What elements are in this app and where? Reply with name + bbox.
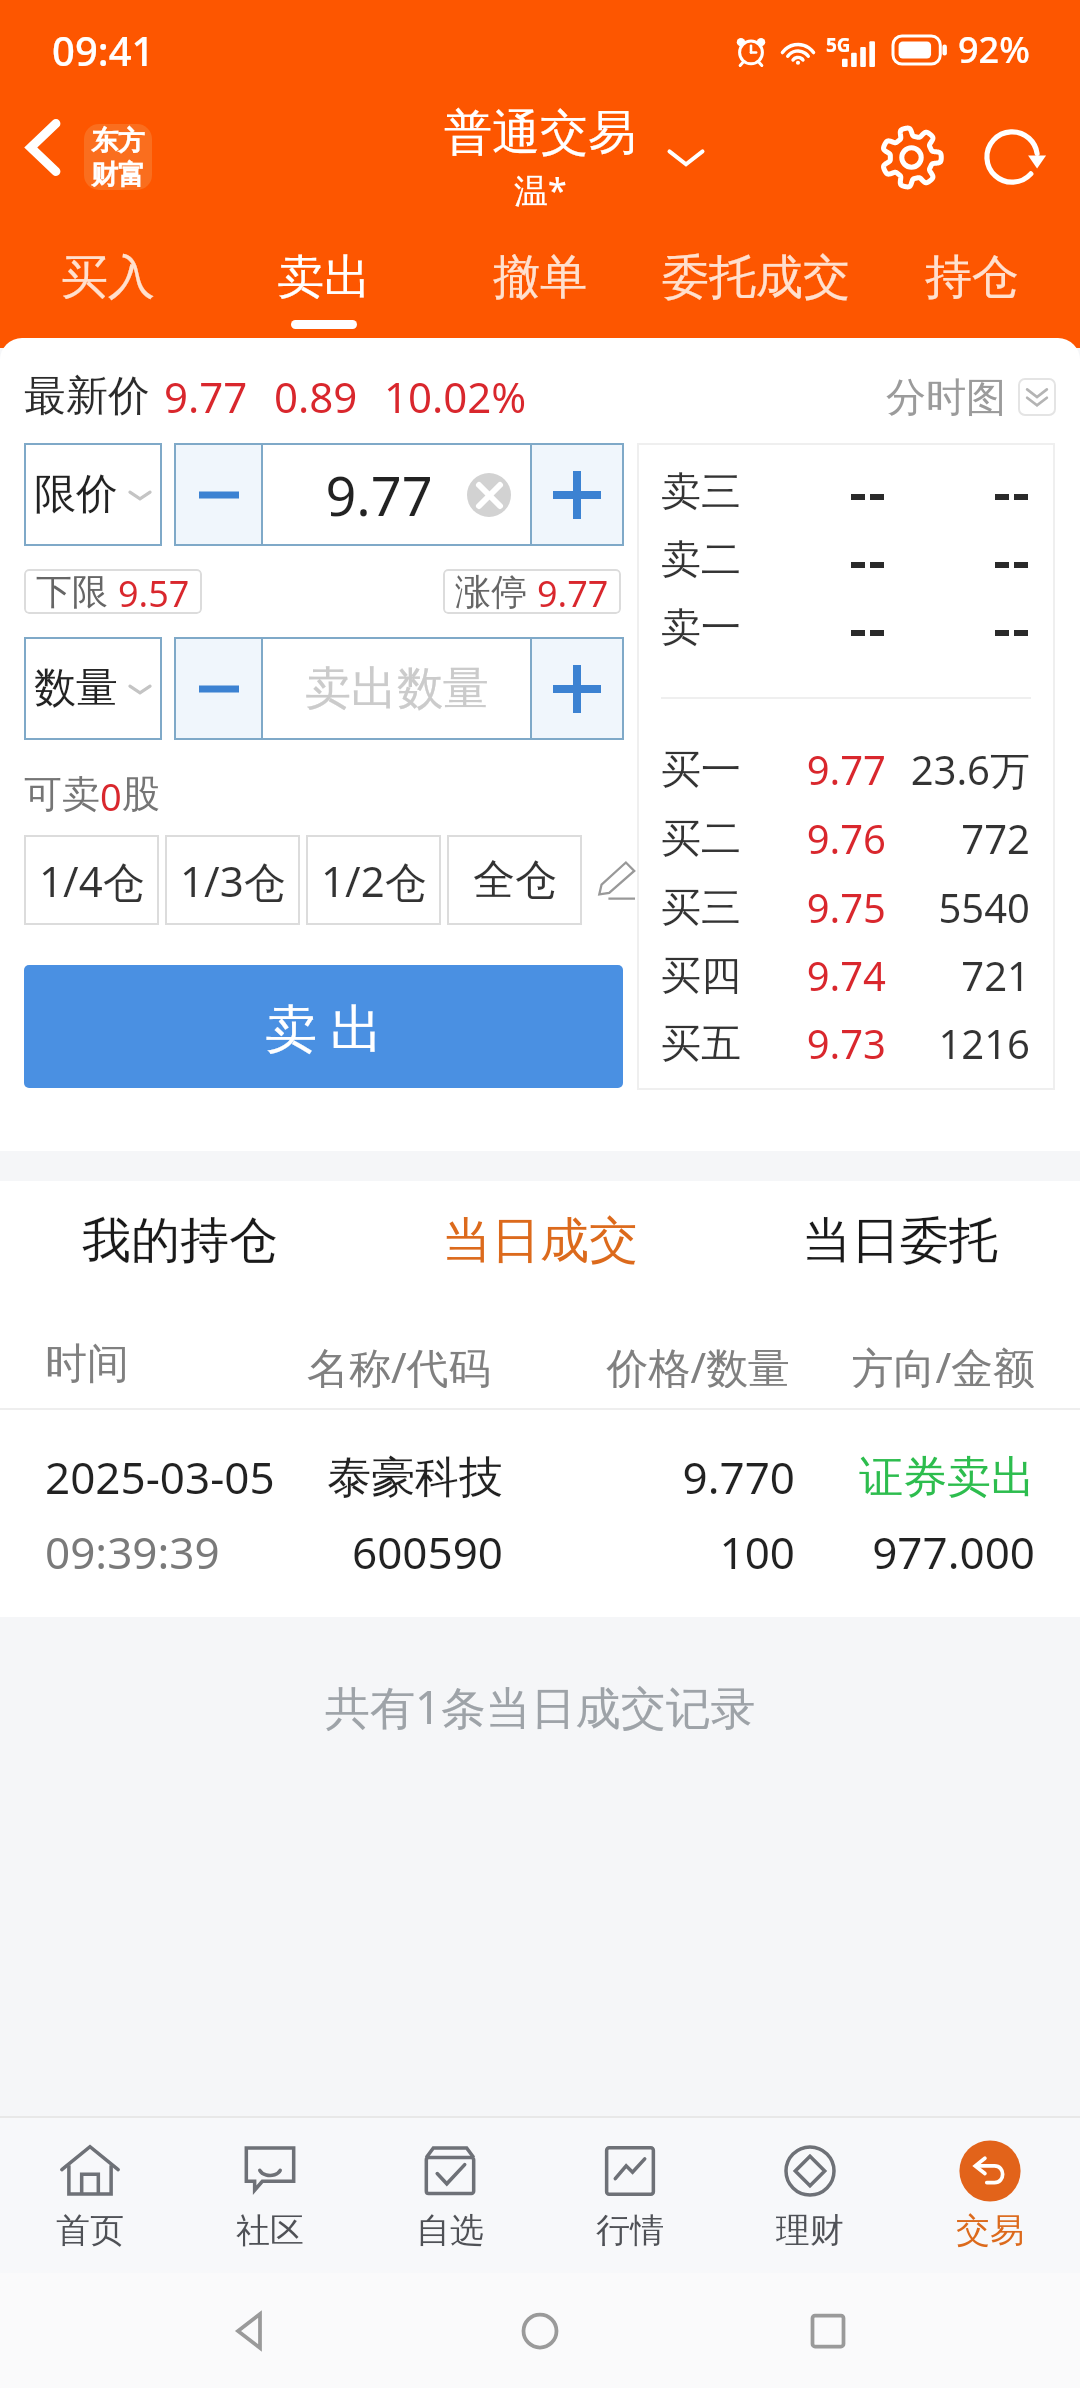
button[interactable]: 卖出数量 bbox=[263, 637, 530, 740]
button[interactable]: 卖一 bbox=[637, 597, 1055, 657]
staticText: 温* bbox=[514, 167, 567, 213]
button[interactable]: 委托成交 bbox=[648, 233, 864, 338]
button[interactable]: Back bbox=[216, 2295, 288, 2367]
staticText: 9.57 bbox=[118, 569, 190, 614]
button[interactable]: 2025-03-05 bbox=[0, 1443, 1080, 1598]
staticText: 涨停 bbox=[455, 569, 527, 614]
staticText: 9.77 bbox=[281, 458, 477, 532]
button[interactable]: 买入 bbox=[0, 233, 216, 338]
button[interactable]: 1/2仓 bbox=[306, 835, 441, 925]
button[interactable]: 买一 bbox=[637, 739, 1055, 799]
staticText: 交易 bbox=[956, 2209, 1024, 2252]
staticText: 1/4仓 bbox=[39, 852, 145, 909]
staticText: 当日成交 bbox=[442, 1210, 638, 1272]
button[interactable]: 卖出 bbox=[216, 233, 432, 338]
staticText: 分时图 bbox=[886, 372, 1006, 422]
staticText: 东方 bbox=[91, 124, 145, 158]
staticText: 10.02% bbox=[384, 368, 527, 425]
button[interactable]: Decrease bbox=[174, 443, 263, 546]
staticText: 09:39:39 bbox=[45, 1522, 220, 1582]
button[interactable]: Decrease bbox=[174, 637, 263, 740]
staticText: 9.770 bbox=[0, 1447, 795, 1507]
button[interactable]: 理财 bbox=[720, 2118, 900, 2273]
button[interactable]: Edit bbox=[588, 852, 644, 908]
button[interactable]: 涨停 bbox=[443, 569, 621, 614]
button[interactable]: 限价 bbox=[24, 443, 162, 546]
staticText: 全仓 bbox=[473, 854, 557, 907]
staticText: 社区 bbox=[236, 2209, 304, 2252]
staticText: 9.75 bbox=[637, 880, 886, 934]
staticText: 5540 bbox=[637, 880, 1030, 934]
staticText: 数量 bbox=[34, 662, 118, 715]
staticText: 1/3仓 bbox=[180, 852, 286, 909]
staticText: 卖出 bbox=[277, 248, 371, 307]
staticText: 772 bbox=[637, 811, 1030, 865]
button[interactable]: Recents bbox=[792, 2295, 864, 2367]
staticText: 卖二 bbox=[661, 534, 741, 584]
button[interactable]: Clear bbox=[467, 473, 511, 517]
button[interactable]: 1/3仓 bbox=[165, 835, 300, 925]
button[interactable]: 持仓 bbox=[864, 233, 1080, 338]
staticText: 撤单 bbox=[493, 248, 587, 307]
button[interactable]: 交易 bbox=[900, 2118, 1080, 2273]
staticText: 9.77 bbox=[537, 569, 609, 614]
staticText: 100 bbox=[0, 1522, 795, 1582]
staticText: 持仓 bbox=[925, 248, 1019, 307]
button[interactable]: Refresh bbox=[972, 114, 1058, 200]
button[interactable]: 首页 bbox=[0, 2118, 180, 2273]
button[interactable]: Expand chart bbox=[1018, 378, 1056, 416]
button[interactable]: 1/4仓 bbox=[24, 835, 159, 925]
staticText: 买一 bbox=[661, 744, 741, 794]
staticText: 买入 bbox=[61, 248, 155, 307]
staticText: 首页 bbox=[56, 2209, 124, 2252]
staticText: 价格/数量 bbox=[0, 1338, 790, 1388]
button[interactable]: 全仓 bbox=[447, 835, 582, 925]
staticText: 委托成交 bbox=[662, 248, 850, 307]
staticText: 时间 bbox=[45, 1338, 129, 1388]
button[interactable]: 买二 bbox=[637, 808, 1055, 868]
button[interactable]: 买五 bbox=[637, 1013, 1055, 1073]
staticText: 自选 bbox=[416, 2209, 484, 2252]
staticText: 买三 bbox=[661, 882, 741, 932]
staticText: 买二 bbox=[661, 813, 741, 863]
staticText: 09:41 bbox=[52, 23, 155, 77]
staticText: 卖 出 bbox=[265, 991, 383, 1062]
button[interactable]: Increase bbox=[530, 637, 624, 740]
staticText: 9.77 bbox=[637, 742, 886, 796]
staticText: 理财 bbox=[776, 2209, 844, 2252]
button[interactable]: 自选 bbox=[360, 2118, 540, 2273]
button[interactable]: 数量 bbox=[24, 637, 162, 740]
button[interactable]: 卖 出 bbox=[24, 965, 623, 1088]
staticText: 方向/金额 bbox=[0, 1338, 1035, 1388]
button[interactable]: 社区 bbox=[180, 2118, 360, 2273]
staticText: 卖一 bbox=[661, 602, 741, 652]
staticText: 卖三 bbox=[661, 466, 741, 516]
staticText: 买四 bbox=[661, 950, 741, 1000]
staticText: 2025-03-05 bbox=[45, 1447, 275, 1507]
button[interactable]: 我的持仓 bbox=[0, 1201, 360, 1281]
staticText: 92% bbox=[958, 25, 1030, 74]
button[interactable]: Back bbox=[3, 107, 83, 187]
button[interactable]: Home bbox=[504, 2295, 576, 2367]
button[interactable]: 行情 bbox=[540, 2118, 720, 2273]
staticText: 721 bbox=[637, 948, 1030, 1002]
button[interactable]: 卖二 bbox=[637, 529, 1055, 589]
staticText: 0.89 bbox=[274, 368, 358, 425]
button[interactable]: 当日成交 bbox=[360, 1201, 720, 1281]
staticText: 名称/代码 bbox=[307, 1338, 491, 1388]
staticText: 泰豪科技 bbox=[0, 1450, 503, 1505]
button[interactable]: 撤单 bbox=[432, 233, 648, 338]
staticText: 9.76 bbox=[637, 811, 886, 865]
button[interactable]: 卖三 bbox=[637, 461, 1055, 521]
staticText: 股 bbox=[122, 770, 160, 818]
button[interactable]: 买三 bbox=[637, 877, 1055, 937]
button[interactable]: 买四 bbox=[637, 945, 1055, 1005]
button[interactable]: 东方 bbox=[84, 124, 152, 190]
staticText: 行情 bbox=[596, 2209, 664, 2252]
button[interactable]: Settings bbox=[868, 114, 954, 200]
button[interactable]: 下限 bbox=[24, 569, 202, 614]
button[interactable]: Increase bbox=[530, 443, 624, 546]
staticText: 下限 bbox=[36, 569, 108, 614]
button[interactable]: 当日委托 bbox=[720, 1201, 1080, 1281]
staticText: 1216 bbox=[637, 1016, 1030, 1070]
